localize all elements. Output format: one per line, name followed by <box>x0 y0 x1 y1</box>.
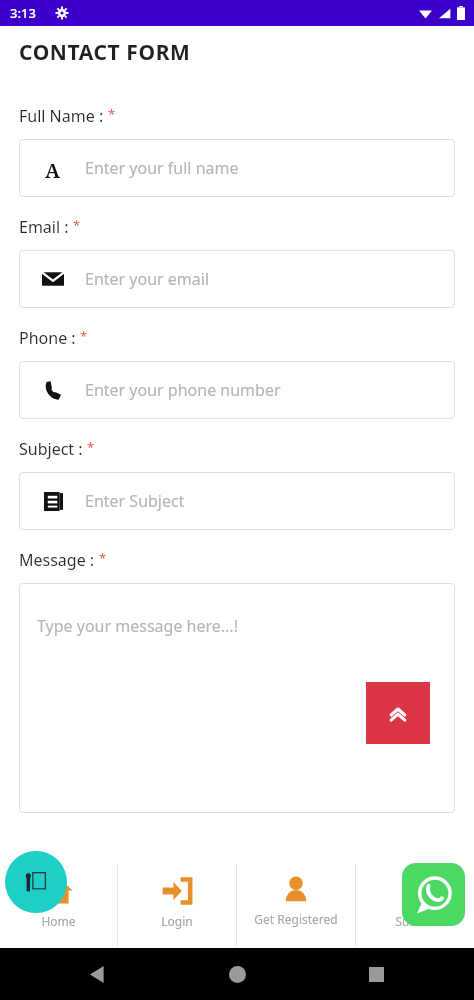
staticText: Type your message here...! <box>37 615 238 637</box>
button[interactable]: A <box>19 139 455 197</box>
staticText: Phone : <box>19 327 80 349</box>
staticText: Subject : <box>19 438 87 460</box>
button[interactable]: Login <box>118 862 236 948</box>
staticText: Get Registered <box>254 911 338 927</box>
button[interactable]: Enter your phone number <box>19 361 455 419</box>
staticText: Message : <box>19 549 99 571</box>
staticText: Email : <box>19 216 73 238</box>
button[interactable]: WhatsApp <box>402 863 465 926</box>
staticText: 3:13 <box>10 4 36 22</box>
staticText: A <box>45 157 61 179</box>
button[interactable]: Type your message here...! <box>19 583 455 813</box>
staticText: * <box>73 216 81 234</box>
staticText: Submit <box>395 913 436 929</box>
button[interactable]: Scroll up <box>366 682 430 744</box>
button[interactable]: Contact <box>5 851 67 913</box>
staticText: Full Name : <box>19 105 108 127</box>
staticText: CONTACT FORM <box>19 38 191 67</box>
staticText: * <box>99 549 107 567</box>
staticText: Enter your phone number <box>85 379 281 401</box>
staticText: Enter your full name <box>85 157 239 179</box>
button[interactable]: Enter Subject <box>19 472 455 530</box>
button[interactable]: Submit <box>356 862 474 948</box>
staticText: Enter Subject <box>85 490 185 512</box>
button[interactable]: Home <box>0 862 117 948</box>
staticText: Home <box>41 913 76 929</box>
staticText: * <box>80 327 88 345</box>
button[interactable]: Enter your email <box>19 250 455 308</box>
staticText: Login <box>161 913 193 929</box>
button[interactable]: Get Registered <box>237 862 355 948</box>
staticText: * <box>108 105 116 123</box>
staticText: Enter your email <box>85 268 210 290</box>
staticText: * <box>87 438 95 456</box>
